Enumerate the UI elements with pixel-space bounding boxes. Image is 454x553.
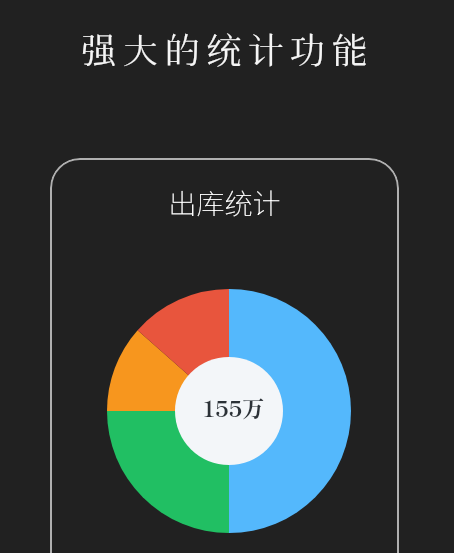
staticText: 出库统计 bbox=[50, 182, 399, 223]
staticText: 强大的统计功能 bbox=[0, 28, 454, 72]
staticText: 155万 bbox=[202, 391, 265, 424]
button[interactable]: 出库统计 bbox=[50, 158, 399, 553]
button[interactable]: 出库统计饼图 155万 bbox=[107, 289, 351, 533]
